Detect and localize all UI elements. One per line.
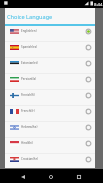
button[interactable]: English(en)	[5, 26, 95, 42]
staticText: Hebrew(he)	[21, 125, 38, 129]
staticText: Spanish(es)	[21, 45, 38, 49]
staticText: 8:44	[94, 2, 103, 8]
staticText: Persian(fa)	[21, 77, 37, 81]
button[interactable]: Home	[43, 170, 59, 183]
button[interactable]: Hebrew(he)	[5, 122, 95, 138]
button[interactable]: Persian(fa)	[5, 74, 95, 90]
button[interactable]: Recents	[71, 170, 87, 183]
staticText: French(fr)	[21, 109, 35, 113]
button[interactable]: Croatian(hr)	[5, 154, 95, 168]
button[interactable]: Back	[15, 170, 31, 183]
staticText: Hindi(hi)	[21, 141, 33, 145]
staticText: English(en)	[21, 29, 37, 33]
staticText: Choice Language	[7, 13, 53, 21]
staticText: Croatian(hr)	[21, 157, 38, 161]
button[interactable]: Hindi(hi)	[5, 138, 95, 154]
button[interactable]: Spanish(es)	[5, 42, 95, 58]
button[interactable]: Finnish(fi)	[5, 90, 95, 106]
staticText: Estonian(et)	[21, 61, 38, 65]
button[interactable]: French(fr)	[5, 106, 95, 122]
button[interactable]: Estonian(et)	[5, 58, 95, 74]
staticText: Finnish(fi)	[21, 93, 35, 97]
